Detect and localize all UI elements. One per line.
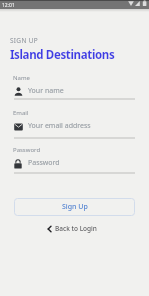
- staticText: Island Destinations: [10, 47, 115, 63]
- staticText: Your email address: [28, 121, 91, 131]
- button[interactable]: [14, 120, 135, 139]
- staticText: Email: [13, 109, 29, 117]
- button[interactable]: [14, 156, 135, 174]
- button[interactable]: Sign Up: [14, 198, 135, 216]
- staticText: Back to Login: [55, 224, 97, 233]
- staticText: Your name: [28, 86, 64, 96]
- staticText: Password: [13, 146, 41, 154]
- staticText: Password: [28, 158, 60, 168]
- button[interactable]: Back to Login: [47, 224, 97, 233]
- staticText: SIGN UP: [10, 36, 38, 45]
- staticText: 12:01: [2, 2, 15, 9]
- staticText: Name: [13, 74, 30, 82]
- button[interactable]: [14, 84, 135, 99]
- staticText: Sign Up: [62, 202, 88, 212]
